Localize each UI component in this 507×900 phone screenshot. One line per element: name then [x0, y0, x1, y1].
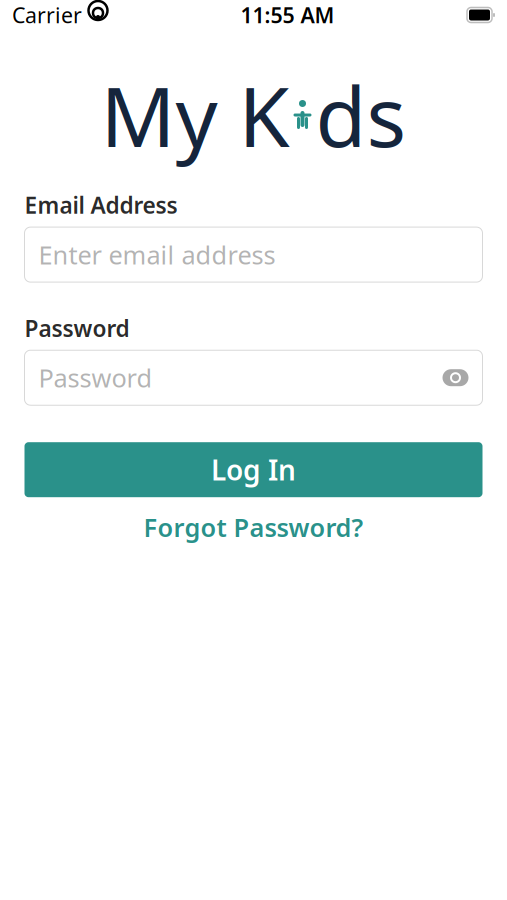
- staticText: K: [217, 59, 289, 171]
- button[interactable]: Show password: [438, 361, 472, 395]
- staticText: My: [100, 59, 217, 171]
- staticText: Enter email address: [38, 238, 275, 271]
- staticText: 11:55 AM: [240, 1, 334, 29]
- staticText: Forgot Password?: [143, 510, 363, 544]
- staticText: Carrier: [12, 1, 82, 29]
- button[interactable]: Forgot Password?: [24, 507, 482, 547]
- button[interactable]: Log In: [24, 442, 482, 497]
- staticText: Password: [24, 313, 129, 343]
- staticText: Password: [38, 361, 152, 394]
- staticText: Log In: [211, 451, 296, 488]
- staticText: Email Address: [24, 190, 177, 220]
- staticText: ds: [315, 59, 406, 171]
